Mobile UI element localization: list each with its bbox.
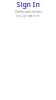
staticText: Sign In [16, 0, 39, 9]
staticText: Hello world test [14, 9, 41, 14]
staticText: tiny 2pt text here [16, 14, 40, 18]
